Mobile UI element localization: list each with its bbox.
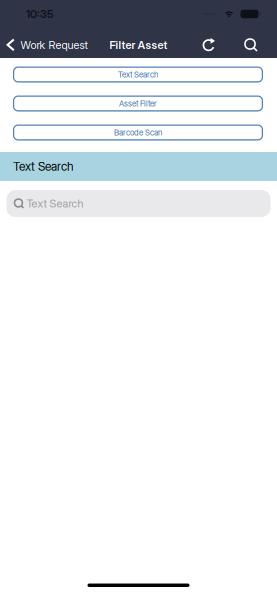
- button[interactable]: Barcode Scan: [13, 124, 263, 140]
- staticText: Text Search: [118, 70, 158, 79]
- button[interactable]: Asset Filter: [13, 95, 263, 111]
- staticText: Text Search: [13, 159, 74, 174]
- staticText: Asset Filter: [119, 99, 157, 108]
- button[interactable]: Text Search: [13, 66, 263, 82]
- staticText: 10:35: [26, 7, 54, 20]
- button[interactable]: Text Search field: [6, 190, 270, 217]
- staticText: Barcode Scan: [114, 128, 162, 137]
- button[interactable]: Search: [216, 38, 277, 52]
- staticText: Text Search: [26, 197, 83, 210]
- staticText: Work Request: [20, 38, 87, 51]
- staticText: Filter Asset: [109, 38, 167, 51]
- button[interactable]: Back: [0, 38, 87, 52]
- button[interactable]: Refresh: [202, 38, 216, 52]
